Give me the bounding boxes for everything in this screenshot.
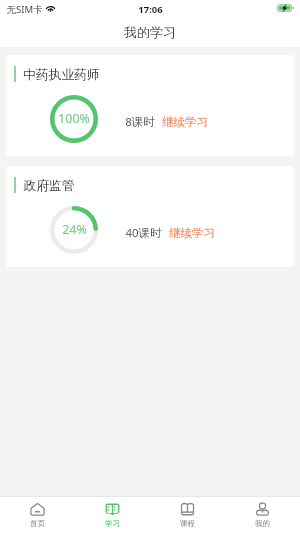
button[interactable]: 中药执业药师 <box>6 55 294 156</box>
staticText: 我的学习 <box>124 24 176 40</box>
staticText: 课程 <box>180 519 195 528</box>
button[interactable]: 政府监管 <box>6 166 294 267</box>
staticText: 40课时 <box>125 225 162 241</box>
staticText: 学习 <box>105 519 120 528</box>
staticText: 100% <box>58 110 90 127</box>
staticText: 8课时 <box>125 114 155 130</box>
staticText: 继续学习 <box>162 115 208 129</box>
button[interactable]: 学习 <box>75 497 150 533</box>
staticText: 中药执业药师 <box>23 67 100 83</box>
staticText: 政府监管 <box>23 178 75 194</box>
staticText: 我的 <box>255 519 270 528</box>
staticText: 17:06 <box>138 3 163 16</box>
staticText: 24% <box>62 221 87 238</box>
staticText: 无SIM卡 <box>6 3 43 16</box>
button[interactable]: 我的 <box>225 497 300 533</box>
button[interactable]: 课程 <box>150 497 225 533</box>
staticText: 首页 <box>30 519 45 528</box>
button[interactable]: 继续学习 <box>169 226 215 240</box>
button[interactable]: 继续学习 <box>162 115 208 129</box>
staticText: 继续学习 <box>169 226 215 240</box>
button[interactable]: 首页 <box>0 497 75 533</box>
